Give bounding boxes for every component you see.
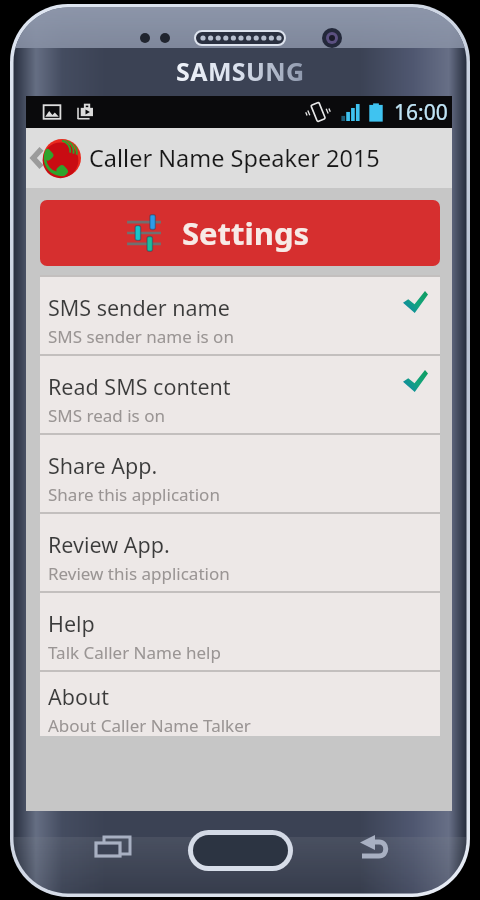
staticText: SMS read is on (48, 404, 165, 427)
staticText: Review App. (48, 530, 170, 559)
staticText: SAMSUNG (176, 54, 305, 88)
button[interactable]: Settings (40, 200, 440, 266)
staticText: SMS sender name is on (48, 325, 234, 348)
staticText: SMS sender name (48, 293, 230, 322)
staticText: About Caller Name Talker (48, 714, 251, 736)
staticText: Share this application (48, 483, 220, 506)
staticText: Review this application (48, 562, 230, 585)
other: Enabled (403, 291, 428, 313)
button[interactable]: Share App. (40, 435, 440, 512)
staticText: 16:00 (394, 98, 448, 127)
other: Enabled (403, 370, 428, 392)
button[interactable]: Read SMS content (40, 356, 440, 433)
button[interactable]: SMS sender name (40, 277, 440, 354)
staticText: Talk Caller Name help (48, 641, 221, 664)
button[interactable]: Review App. (40, 514, 440, 591)
staticText: Help (48, 609, 95, 638)
staticText: About (48, 682, 110, 711)
staticText: Settings (182, 212, 310, 254)
other: Back (32, 148, 42, 168)
staticText: Read SMS content (48, 372, 231, 401)
staticText: Caller Name Speaker 2015 (89, 142, 380, 174)
staticText: Share App. (48, 451, 158, 480)
button[interactable]: Help (40, 593, 440, 670)
button[interactable]: About (40, 672, 440, 736)
